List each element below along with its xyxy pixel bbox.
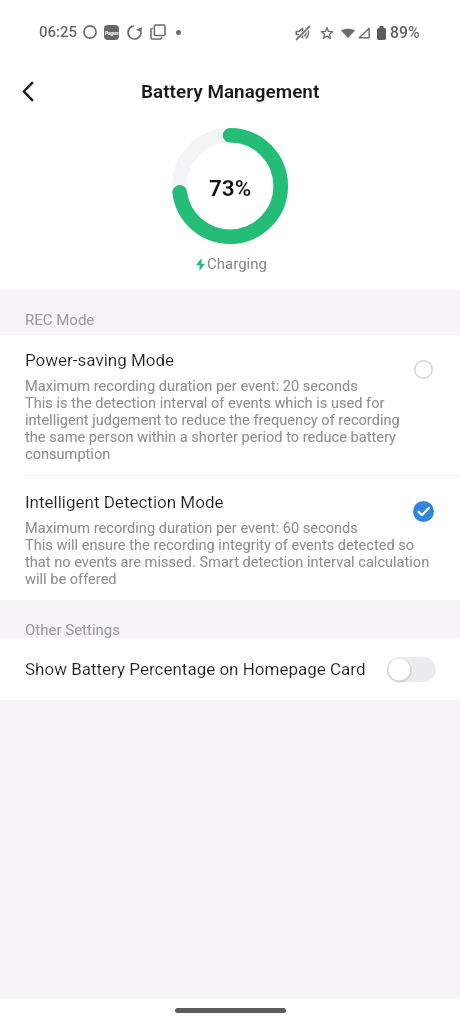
staticText: 73%	[209, 175, 252, 201]
staticText: Intelligent Detection Mode	[25, 492, 224, 512]
staticText: Show Battery Percentage on Homepage Card	[25, 659, 366, 679]
staticText: Charging	[207, 255, 267, 273]
staticText: Pagos	[105, 30, 119, 36]
staticText: 89%	[390, 23, 420, 42]
staticText: 06:25	[39, 23, 78, 41]
staticText: Maximum recording duration per event: 60…	[25, 519, 430, 587]
staticText: REC Mode	[25, 311, 95, 329]
staticText: Power-saving Mode	[25, 350, 175, 370]
staticText: Battery Management	[141, 80, 320, 102]
button[interactable]: Not selected	[404, 350, 442, 388]
button[interactable]: Selected	[404, 492, 442, 530]
button[interactable]: Back	[6, 69, 50, 113]
button[interactable]: Show Battery Percentage on Homepage Card	[0, 638, 460, 700]
staticText: Maximum recording duration per event: 20…	[25, 377, 400, 462]
staticText: Other Settings	[25, 621, 121, 639]
